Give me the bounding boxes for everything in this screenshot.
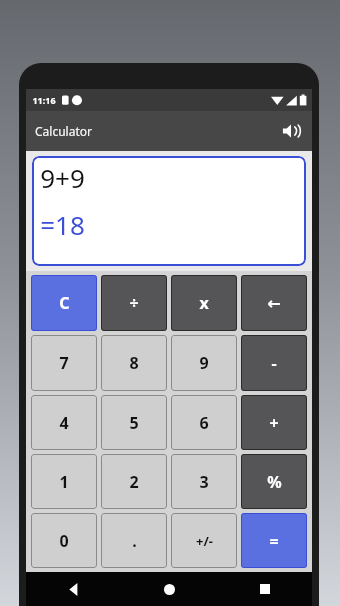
button[interactable]: ← (241, 275, 307, 331)
button[interactable]: Home (122, 572, 217, 606)
button[interactable]: Recents (217, 572, 312, 606)
staticText: - (271, 352, 277, 374)
button[interactable]: C (31, 275, 97, 331)
button[interactable]: % (241, 454, 307, 509)
button[interactable]: 6 (171, 395, 237, 450)
staticText: 9+9 (40, 160, 85, 195)
staticText: x (199, 292, 209, 314)
staticText: ← (267, 294, 281, 313)
staticText: 0 (59, 530, 69, 552)
staticText: ÷ (129, 292, 139, 314)
button[interactable]: ÷ (101, 275, 167, 331)
staticText: 7 (59, 352, 69, 374)
staticText: 5 (129, 412, 139, 434)
staticText: 8 (129, 352, 139, 374)
button[interactable]: 7 (31, 335, 97, 391)
staticText: = (269, 530, 279, 552)
button[interactable]: 0 (31, 513, 97, 568)
staticText: 6 (199, 412, 209, 434)
button[interactable]: 1 (31, 454, 97, 509)
button[interactable]: . (101, 513, 167, 568)
button[interactable]: +/- (171, 513, 237, 568)
button[interactable]: 2 (101, 454, 167, 509)
staticText: % (267, 471, 282, 493)
staticText: Calculator (35, 123, 92, 139)
staticText: . (132, 530, 137, 552)
staticText: +/- (196, 532, 213, 550)
staticText: 1 (59, 471, 69, 493)
button[interactable]: 8 (101, 335, 167, 391)
button[interactable]: + (241, 395, 307, 450)
staticText: 4 (59, 412, 69, 434)
button[interactable]: Back (26, 572, 122, 606)
button[interactable]: x (171, 275, 237, 331)
button[interactable]: Sound (276, 116, 306, 146)
button[interactable]: = (241, 513, 307, 568)
button[interactable]: 4 (31, 395, 97, 450)
staticText: =18 (40, 207, 85, 242)
staticText: + (269, 412, 279, 434)
button[interactable]: 3 (171, 454, 237, 509)
staticText: 3 (199, 471, 209, 493)
button[interactable]: 9 (171, 335, 237, 391)
staticText: 2 (129, 471, 139, 493)
button[interactable]: - (241, 335, 307, 391)
button[interactable]: 5 (101, 395, 167, 450)
staticText: 9 (199, 352, 209, 374)
staticText: C (59, 292, 70, 314)
staticText: 11:16 (32, 94, 56, 106)
